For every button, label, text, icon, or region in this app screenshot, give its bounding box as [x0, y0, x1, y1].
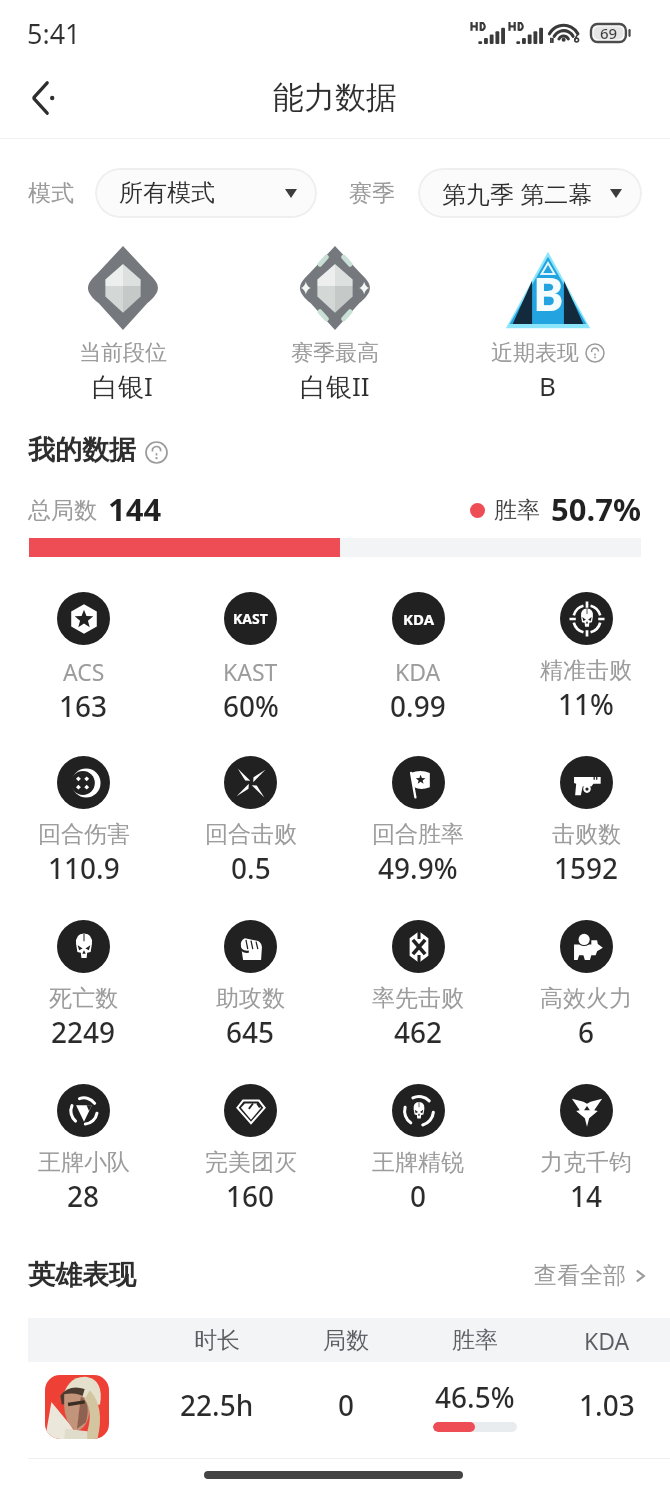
- staticText: KDA: [395, 656, 441, 687]
- staticText: 50.7%: [551, 488, 641, 530]
- staticText: 完美团灭: [205, 1148, 297, 1177]
- staticText: 110.9: [48, 849, 120, 887]
- button[interactable]: 查看全部: [534, 1261, 648, 1290]
- button[interactable]: KAST: [167, 592, 334, 725]
- button[interactable]: 第九季 第二幕: [418, 168, 642, 218]
- staticText: 查看全部: [534, 1261, 626, 1290]
- staticText: 局数: [323, 1326, 369, 1355]
- staticText: 0: [410, 1177, 427, 1215]
- staticText: 赛季: [349, 179, 395, 208]
- button[interactable]: 王牌小队: [0, 1084, 167, 1215]
- button[interactable]: ACS: [0, 592, 167, 725]
- staticText: KAST: [233, 609, 268, 628]
- button[interactable]: 完美团灭: [167, 1084, 334, 1215]
- staticText: 144: [108, 488, 162, 530]
- staticText: 163: [59, 687, 108, 725]
- button[interactable]: 力克千钧: [502, 1084, 670, 1215]
- staticText: 0: [338, 1386, 355, 1424]
- staticText: ACS: [63, 656, 105, 687]
- staticText: 回合胜率: [372, 820, 464, 849]
- button[interactable]: 率先击败: [334, 920, 502, 1051]
- button[interactable]: Back: [15, 71, 69, 125]
- staticText: KDA: [584, 1325, 630, 1356]
- staticText: 所有模式: [119, 178, 215, 208]
- staticText: B: [533, 262, 564, 325]
- staticText: 回合伤害: [38, 820, 130, 849]
- button[interactable]: B: [425, 246, 670, 403]
- staticText: 1592: [554, 849, 619, 887]
- staticText: 击败数: [552, 820, 621, 849]
- staticText: 赛季最高: [291, 339, 379, 367]
- staticText: 死亡数: [49, 984, 118, 1013]
- staticText: 时长: [194, 1326, 240, 1355]
- staticText: 28: [67, 1177, 100, 1215]
- staticText: 胜率: [494, 496, 540, 525]
- button[interactable]: 高效火力: [502, 920, 670, 1051]
- staticText: 助攻数: [216, 984, 285, 1013]
- button[interactable]: 死亡数: [0, 920, 167, 1051]
- staticText: 英雄表现: [28, 1258, 136, 1292]
- staticText: 11%: [558, 685, 614, 723]
- staticText: 0.99: [390, 687, 446, 725]
- staticText: 22.5h: [180, 1386, 254, 1424]
- staticText: 王牌小队: [38, 1148, 130, 1177]
- staticText: 模式: [28, 179, 74, 208]
- staticText: 1.03: [579, 1386, 635, 1424]
- staticText: 能力数据: [273, 78, 397, 117]
- staticText: 46.5%: [435, 1378, 515, 1416]
- button[interactable]: 回合胜率: [334, 756, 502, 887]
- staticText: 精准击败: [540, 656, 632, 685]
- staticText: 率先击败: [372, 984, 464, 1013]
- staticText: 2249: [51, 1013, 116, 1051]
- staticText: 462: [394, 1013, 443, 1051]
- staticText: 49.9%: [378, 849, 458, 887]
- staticText: 高效火力: [540, 984, 632, 1013]
- staticText: 回合击败: [205, 820, 297, 849]
- button[interactable]: 当前段位: [0, 246, 245, 404]
- staticText: 645: [226, 1013, 275, 1051]
- staticText: B: [539, 368, 556, 403]
- button[interactable]: 精准击败: [502, 592, 670, 723]
- staticText: 69: [600, 23, 618, 43]
- staticText: 0.5: [231, 849, 271, 887]
- button[interactable]: 助攻数: [167, 920, 334, 1051]
- staticText: 5:41: [27, 15, 81, 52]
- staticText: 14: [570, 1177, 603, 1215]
- staticText: 白银I: [92, 368, 153, 404]
- staticText: 60%: [223, 687, 279, 725]
- staticText: 白银II: [300, 368, 370, 404]
- button[interactable]: KDA: [334, 592, 502, 725]
- button[interactable]: 赛季最高: [212, 246, 457, 404]
- staticText: 我的数据: [28, 433, 136, 467]
- staticText: 160: [226, 1177, 275, 1215]
- button[interactable]: 击败数: [502, 756, 670, 887]
- button[interactable]: 回合击败: [167, 756, 334, 887]
- staticText: 当前段位: [79, 339, 167, 367]
- staticText: 胜率: [452, 1326, 498, 1355]
- staticText: 总局数: [28, 496, 97, 525]
- staticText: 力克千钧: [540, 1148, 632, 1177]
- staticText: 王牌精锐: [372, 1148, 464, 1177]
- staticText: 第九季 第二幕: [442, 177, 593, 210]
- button[interactable]: 王牌精锐: [334, 1084, 502, 1215]
- staticText: 6: [578, 1013, 595, 1051]
- staticText: KAST: [223, 656, 278, 687]
- staticText: KDA: [403, 609, 435, 629]
- staticText: 近期表现: [491, 339, 579, 367]
- button[interactable]: 回合伤害: [0, 756, 167, 887]
- button[interactable]: 所有模式: [95, 168, 317, 218]
- button[interactable]: 22.5h: [0, 1357, 670, 1452]
